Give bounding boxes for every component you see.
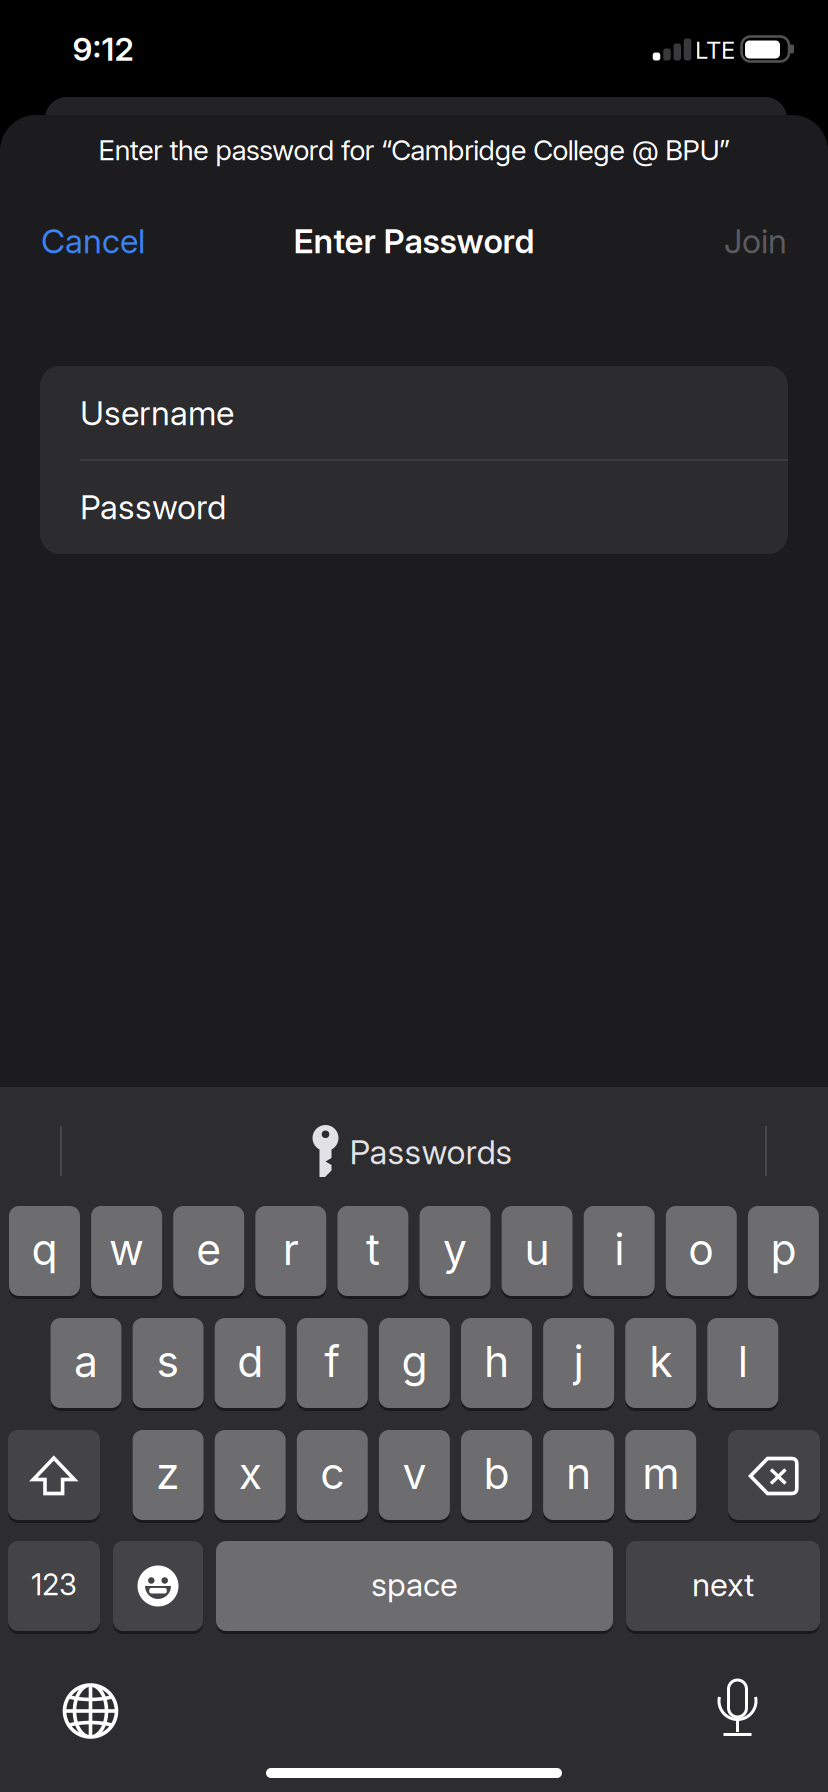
button[interactable]: p: [748, 1206, 819, 1296]
button[interactable]: Username: [40, 366, 788, 459]
staticText: g: [401, 1336, 427, 1387]
staticText: 123: [31, 1567, 77, 1602]
button[interactable]: e: [173, 1206, 244, 1296]
staticText: k: [649, 1336, 672, 1387]
staticText: 9:12: [72, 30, 133, 68]
staticText: f: [324, 1336, 340, 1387]
button[interactable]: q: [9, 1206, 80, 1296]
button[interactable]: i: [584, 1206, 655, 1296]
button[interactable]: x: [215, 1430, 286, 1520]
staticText: b: [483, 1448, 509, 1499]
staticText: Enter the password for “Cambridge Colleg…: [98, 133, 730, 166]
staticText: e: [196, 1224, 221, 1275]
button[interactable]: Password: [40, 460, 788, 553]
staticText: n: [566, 1448, 591, 1499]
button[interactable]: d: [215, 1318, 286, 1408]
button[interactable]: y: [419, 1206, 490, 1296]
button[interactable]: Passwords: [311, 1125, 512, 1179]
staticText: v: [402, 1448, 426, 1499]
staticText: o: [688, 1224, 714, 1275]
staticText: Enter Password: [293, 221, 534, 261]
staticText: u: [525, 1224, 550, 1275]
button[interactable]: w: [91, 1206, 162, 1296]
staticText: z: [156, 1448, 180, 1499]
staticText: c: [320, 1448, 344, 1499]
staticText: x: [239, 1448, 262, 1499]
button[interactable]: v: [379, 1430, 450, 1520]
staticText: y: [443, 1224, 467, 1275]
button[interactable]: space: [216, 1541, 613, 1631]
button[interactable]: k: [625, 1318, 696, 1408]
button[interactable]: Join: [724, 221, 787, 261]
staticText: j: [574, 1336, 584, 1387]
button[interactable]: g: [379, 1318, 450, 1408]
button[interactable]: Dictation: [713, 1673, 761, 1741]
staticText: Password: [80, 487, 226, 527]
staticText: Passwords: [349, 1132, 512, 1172]
staticText: q: [31, 1224, 57, 1275]
button[interactable]: h: [461, 1318, 532, 1408]
staticText: next: [692, 1566, 754, 1603]
button[interactable]: j: [543, 1318, 614, 1408]
button[interactable]: l: [707, 1318, 778, 1408]
button[interactable]: c: [297, 1430, 368, 1520]
button[interactable]: m: [625, 1430, 696, 1520]
button[interactable]: n: [543, 1430, 614, 1520]
button[interactable]: s: [133, 1318, 204, 1408]
staticText: s: [157, 1336, 180, 1387]
button[interactable]: Shift: [8, 1430, 100, 1520]
staticText: Username: [80, 393, 234, 433]
button[interactable]: 123: [8, 1541, 100, 1631]
button[interactable]: f: [297, 1318, 368, 1408]
button[interactable]: t: [337, 1206, 408, 1296]
staticText: LTE: [695, 36, 735, 64]
button[interactable]: Emoji: [113, 1541, 203, 1631]
staticText: Cancel: [41, 221, 145, 261]
button[interactable]: Cancel: [41, 221, 145, 261]
staticText: m: [642, 1448, 679, 1499]
button[interactable]: u: [502, 1206, 573, 1296]
button[interactable]: next: [626, 1541, 820, 1631]
staticText: r: [283, 1224, 299, 1275]
button[interactable]: a: [50, 1318, 121, 1408]
button[interactable]: Next keyboard: [58, 1679, 122, 1743]
staticText: i: [614, 1224, 624, 1275]
staticText: w: [109, 1224, 144, 1275]
staticText: a: [74, 1336, 98, 1387]
staticText: l: [738, 1336, 748, 1387]
staticText: d: [237, 1336, 263, 1387]
staticText: p: [770, 1224, 796, 1275]
button[interactable]: b: [461, 1430, 532, 1520]
staticText: space: [371, 1566, 458, 1603]
button[interactable]: r: [255, 1206, 326, 1296]
staticText: h: [484, 1336, 509, 1387]
staticText: Join: [724, 221, 787, 261]
staticText: t: [366, 1224, 380, 1275]
button[interactable]: z: [133, 1430, 204, 1520]
button[interactable]: o: [666, 1206, 737, 1296]
button[interactable]: Delete: [728, 1430, 820, 1520]
